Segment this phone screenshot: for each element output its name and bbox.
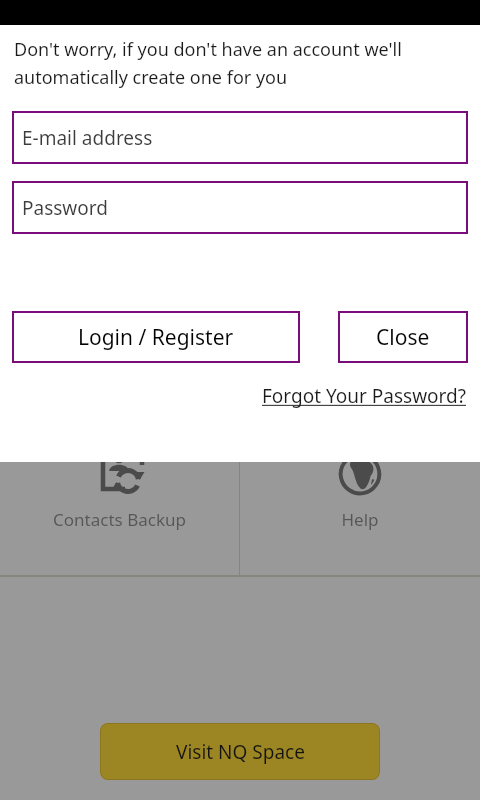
button[interactable]: Forgot Your Password? — [262, 383, 467, 409]
button[interactable]: Login / Register — [12, 311, 300, 363]
button[interactable]: Contacts Backup — [0, 440, 239, 575]
staticText: E-mail address — [22, 125, 153, 151]
staticText: Contacts Backup — [53, 508, 186, 531]
staticText: Visit NQ Space — [176, 739, 305, 765]
button[interactable]: Password — [12, 181, 468, 234]
staticText: Password — [22, 195, 108, 221]
staticText: Don't worry, if you don't have an accoun… — [14, 37, 466, 89]
button[interactable]: Visit NQ Space — [100, 723, 380, 780]
staticText: Forgot Your Password? — [262, 383, 467, 409]
staticText: Help — [341, 508, 379, 531]
button[interactable]: Help — [240, 440, 480, 575]
staticText: Close — [376, 323, 430, 352]
staticText: Login / Register — [78, 323, 234, 352]
button[interactable]: E-mail address — [12, 111, 468, 164]
button[interactable]: Close — [338, 311, 468, 363]
